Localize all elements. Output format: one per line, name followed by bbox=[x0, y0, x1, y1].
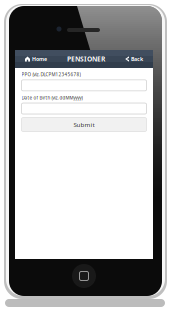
staticText: Date of Birth (viz. ddMMyyyy) bbox=[21, 95, 82, 101]
button[interactable]: Back bbox=[120, 50, 153, 68]
button[interactable]: Home bbox=[15, 50, 52, 68]
staticText: PPO (viz. DLCPM12345678) bbox=[21, 71, 80, 78]
staticText: Submit bbox=[73, 120, 94, 129]
staticText: PENSIONER bbox=[67, 54, 105, 64]
staticText: Home bbox=[32, 55, 47, 63]
button[interactable]: Submit bbox=[21, 118, 146, 131]
staticText: Back bbox=[131, 55, 143, 63]
